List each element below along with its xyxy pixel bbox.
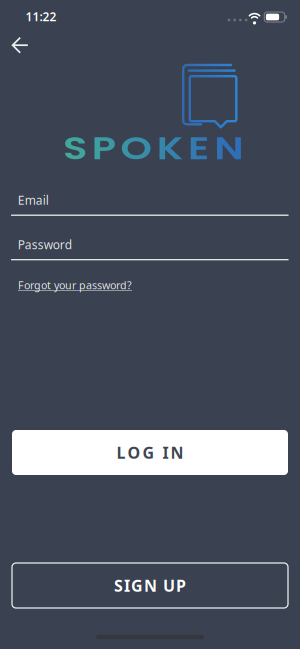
- staticText: SIGN UP: [114, 575, 186, 596]
- button[interactable]: SIGN UP: [12, 563, 288, 608]
- staticText: LOG IN: [116, 442, 183, 463]
- button[interactable]: Back: [5, 29, 36, 61]
- staticText: Password: [18, 237, 72, 252]
- button[interactable]: LOG IN: [12, 430, 288, 475]
- textField[interactable]: Email: [11, 190, 289, 217]
- secureTextField[interactable]: Password: [11, 234, 289, 261]
- staticText: 11:22: [25, 8, 56, 24]
- staticText: Forgot your password?: [18, 278, 132, 292]
- staticText: Email: [18, 192, 49, 208]
- button[interactable]: Forgot your password?: [18, 278, 132, 292]
